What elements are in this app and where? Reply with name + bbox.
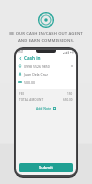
button[interactable]: Juan Dela Cruz <box>16 70 76 78</box>
button[interactable]: Clear <box>70 64 74 68</box>
button[interactable]: Back <box>16 54 76 62</box>
button[interactable]: 0998 5526 9850 <box>16 62 76 70</box>
button[interactable]: 500.00 <box>16 78 76 86</box>
staticText: Cash in <box>24 55 41 61</box>
staticText: 9:41 <box>18 50 24 54</box>
other: App logo <box>38 12 54 28</box>
staticText: Juan Dela Cruz <box>24 72 74 77</box>
button[interactable]: Add Note <box>16 106 76 111</box>
staticText: AND EARN COMMISSIONS. <box>0 38 92 44</box>
staticText: 500.00 <box>24 80 74 85</box>
staticText: BE OUR CASH IN/CASH OUT AGENT <box>0 31 92 37</box>
staticText: 150 <box>67 92 73 96</box>
other: Back <box>18 56 23 61</box>
button[interactable]: Submit <box>19 163 73 172</box>
staticText: Submit <box>39 165 53 170</box>
staticText: TOTAL AMOUNT <box>19 98 44 102</box>
staticText: 650.00 <box>63 98 73 102</box>
staticText: 0998 5526 9850 <box>24 64 70 69</box>
staticText: FEE <box>19 92 25 96</box>
staticText: Add Note <box>36 106 52 111</box>
